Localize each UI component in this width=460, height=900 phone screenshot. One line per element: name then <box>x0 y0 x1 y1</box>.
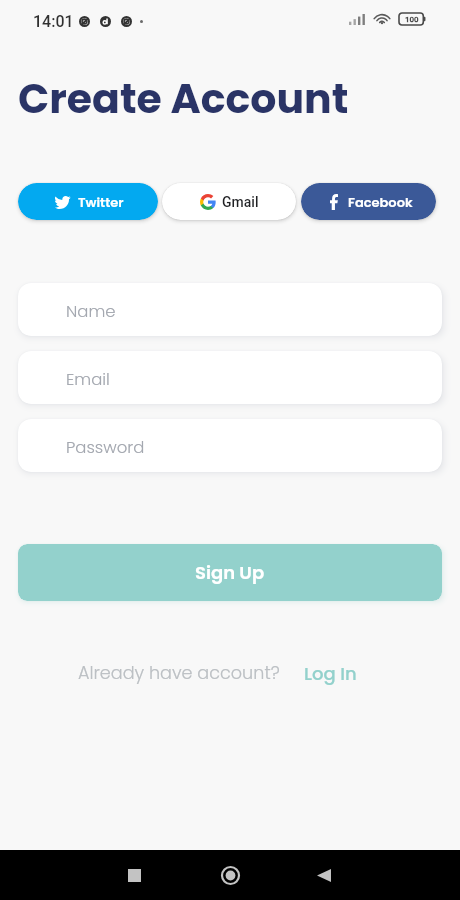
staticText: Twitter <box>78 193 124 211</box>
staticText: 100 <box>405 15 419 24</box>
button[interactable]: Recent apps <box>94 850 174 900</box>
staticText: Create Account <box>18 70 349 127</box>
staticText: Gmail <box>222 194 259 210</box>
button[interactable]: Sign Up <box>18 544 442 601</box>
staticText: Log In <box>304 661 357 686</box>
staticText: Name <box>66 300 116 323</box>
staticText: Password <box>66 436 145 459</box>
staticText: 14:01 <box>33 12 74 31</box>
staticText: Facebook <box>348 193 413 211</box>
staticText: Email <box>66 368 110 391</box>
button[interactable]: Sign up with Facebook <box>301 183 436 220</box>
button[interactable]: Password <box>18 419 442 472</box>
button[interactable]: Email <box>18 351 442 404</box>
button[interactable]: Back <box>284 850 364 900</box>
button[interactable]: Log In <box>304 661 357 686</box>
button[interactable]: Sign up with Gmail <box>162 183 296 220</box>
staticText: Sign Up <box>195 560 265 585</box>
button[interactable]: Home <box>190 850 270 900</box>
button[interactable]: Name <box>18 283 442 336</box>
button[interactable]: Sign up with Twitter <box>18 183 158 220</box>
staticText: Already have account? <box>78 661 280 686</box>
